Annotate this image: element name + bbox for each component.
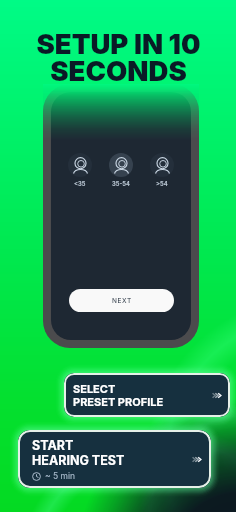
staticText: SETUP IN 10 SECONDS <box>36 27 201 87</box>
button[interactable]: START <box>18 430 211 488</box>
other: Open <box>191 456 204 463</box>
staticText: HEARING TEST <box>32 453 125 468</box>
staticText: PRESET PROFILE <box>73 395 164 408</box>
staticText: <35 <box>74 180 86 187</box>
staticText: 35-54 <box>112 180 130 187</box>
staticText: SELECT <box>73 382 116 395</box>
button[interactable]: >54 <box>150 153 174 187</box>
staticText: NEXT <box>112 297 132 305</box>
other: Open <box>211 392 223 399</box>
staticText: START <box>32 438 74 453</box>
button[interactable]: SELECT <box>64 373 230 417</box>
staticText: >54 <box>156 180 168 187</box>
staticText: ~ 5 min <box>45 471 76 481</box>
button[interactable]: NEXT <box>69 289 174 312</box>
button[interactable]: 35-54 <box>109 153 133 187</box>
button[interactable]: <35 <box>68 153 92 187</box>
